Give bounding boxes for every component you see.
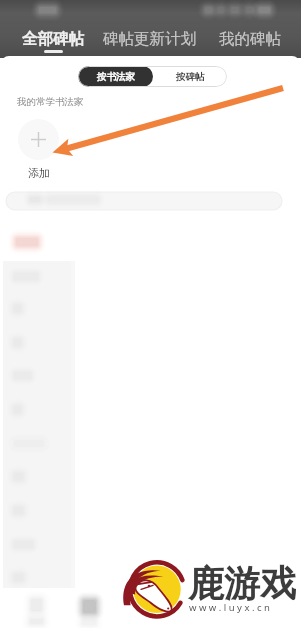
button[interactable]: 我的碑帖 xyxy=(213,29,287,50)
button[interactable]: 碑帖更新计划 xyxy=(96,29,202,50)
staticText: 我的常学书法家 xyxy=(17,96,84,108)
other: 添加 xyxy=(18,119,59,160)
staticText: 鹿游戏 xyxy=(188,561,296,606)
staticText: 添加 xyxy=(28,166,50,180)
staticText: 按碑帖 xyxy=(176,71,205,83)
staticText: w w w . l u y x . c n xyxy=(189,601,270,614)
button[interactable]: 按碑帖 xyxy=(153,66,227,87)
button[interactable]: 添加 xyxy=(18,119,59,180)
staticText: 全部碑帖 xyxy=(22,29,84,49)
staticText: 我的碑帖 xyxy=(219,29,281,49)
button[interactable]: 全部碑帖 xyxy=(16,29,90,53)
staticText: 按书法家 xyxy=(97,71,135,83)
button[interactable]: 按书法家 xyxy=(78,66,153,87)
staticText: 碑帖更新计划 xyxy=(103,29,196,49)
